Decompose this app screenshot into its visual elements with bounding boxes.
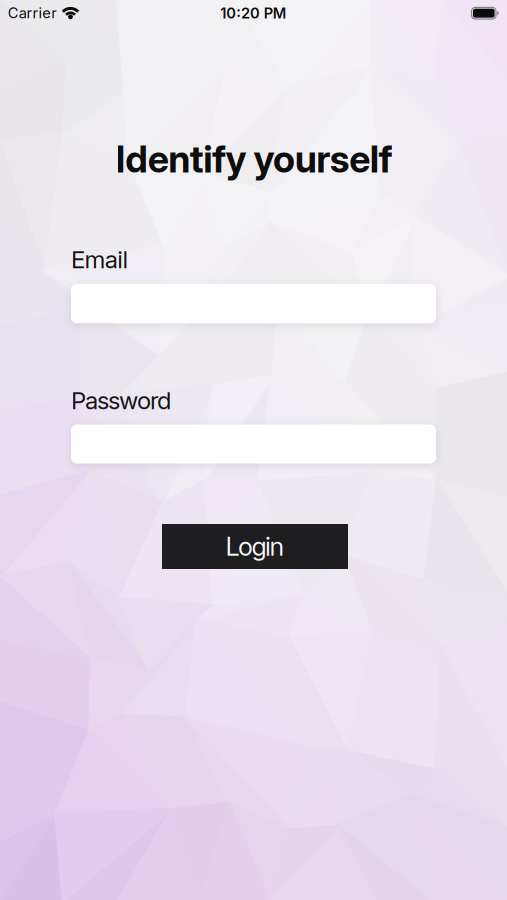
staticText: Login (225, 532, 284, 561)
staticText: Carrier (8, 4, 57, 22)
button[interactable]: Password (71, 424, 436, 463)
staticText: Email (71, 245, 129, 274)
button[interactable]: Login (162, 524, 348, 569)
staticText: 10:20 PM (220, 4, 287, 22)
staticText: Password (71, 386, 171, 415)
staticText: Identify yourself (116, 137, 392, 181)
